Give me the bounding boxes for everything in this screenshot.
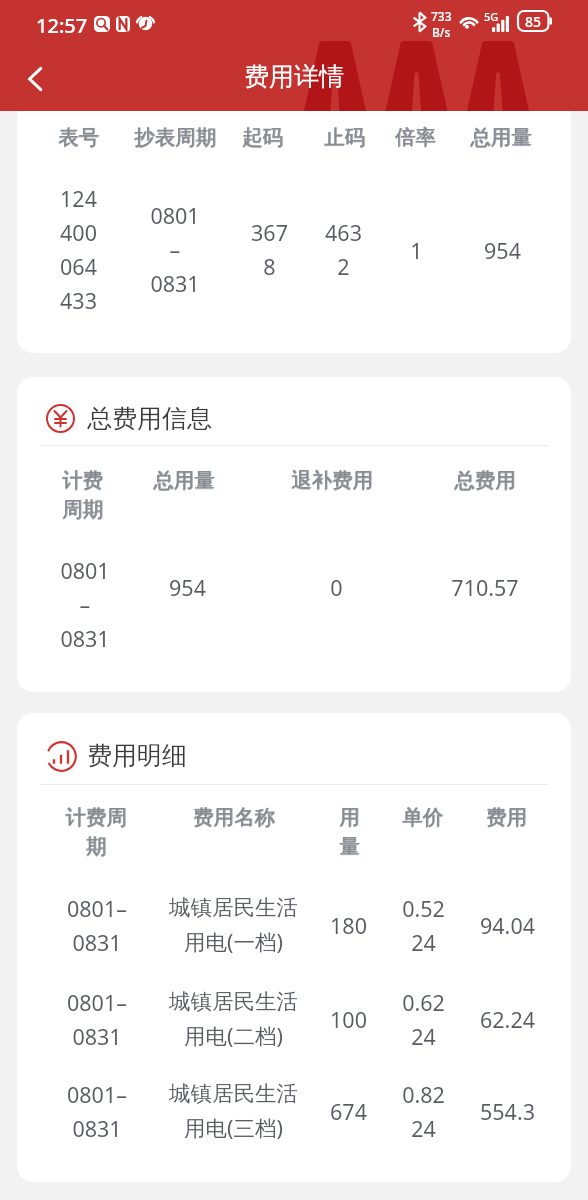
staticText: 733 [431, 8, 452, 24]
staticText: 倍率 [396, 124, 437, 150]
staticText: 城镇居民生活 用电(一档) [169, 894, 298, 956]
staticText: 单价 [402, 805, 443, 831]
staticText: 总费用信息 [87, 403, 212, 434]
staticText: 总费用 [455, 467, 517, 493]
staticText: B/s [432, 24, 451, 40]
staticText: 954 [484, 236, 521, 265]
staticText: 0.82 24 [402, 1080, 445, 1143]
staticText: 总用量 [470, 124, 532, 150]
staticText: 0801– 0831 [67, 894, 127, 957]
staticText: 710.57 [451, 573, 519, 602]
staticText: 0 [330, 573, 343, 602]
staticText: 954 [169, 573, 206, 602]
staticText: 退补费用 [292, 467, 374, 493]
staticText: 城镇居民生活 用电(三档) [169, 1080, 298, 1142]
staticText: 计费 周期 [62, 467, 103, 522]
staticText: 总用量 [154, 467, 216, 493]
staticText: 367 8 [251, 218, 288, 281]
staticText: 单价 [403, 804, 444, 830]
staticText: 用 量 [340, 804, 361, 859]
staticText: 费用 [486, 804, 527, 830]
staticText: 12:57 [36, 12, 88, 39]
staticText: 表号 [59, 124, 100, 150]
staticText: 用 量 [339, 805, 360, 860]
staticText: 倍率 [395, 124, 436, 150]
staticText: 124 400 064 433 [60, 184, 97, 315]
staticText: 计费周 期 [65, 804, 127, 859]
staticText: 起码 [242, 124, 283, 150]
staticText: 0.52 24 [402, 894, 445, 957]
staticText: 表号 [58, 124, 99, 150]
staticText: 止码 [325, 124, 366, 150]
button[interactable]: Back [10, 54, 60, 104]
staticText: 总费用 [454, 467, 516, 493]
staticText: 计费 周期 [62, 468, 103, 523]
staticText: 总用量 [153, 468, 215, 494]
staticText: 用 量 [339, 804, 360, 859]
staticText: 85 [525, 12, 542, 31]
staticText: 起码 [243, 124, 284, 150]
staticText: 计费 周期 [63, 467, 104, 522]
staticText: 62.24 [480, 1005, 535, 1034]
staticText: 倍率 [395, 125, 436, 151]
staticText: 抄表周期 [135, 124, 217, 150]
staticText: 674 [330, 1097, 367, 1126]
staticText: 止码 [324, 124, 365, 150]
staticText: 起码 [242, 125, 283, 151]
staticText: 0801– 0831 [67, 988, 127, 1051]
staticText: 0801– 0831 [67, 1080, 127, 1143]
staticText: 1 [410, 236, 423, 265]
staticText: 单价 [402, 804, 443, 830]
staticText: 总用量 [470, 125, 532, 151]
staticText: 退补费用 [291, 467, 373, 493]
staticText: 计费周 期 [66, 804, 128, 859]
staticText: 0.62 24 [402, 988, 445, 1051]
staticText: 费用 [487, 804, 528, 830]
staticText: 费用名称 [194, 804, 276, 830]
staticText: 554.3 [480, 1097, 535, 1126]
staticText: 费用名称 [193, 804, 275, 830]
staticText: 表号 [58, 125, 99, 151]
staticText: 94.04 [480, 911, 535, 940]
staticText: 0801 – 0831 [60, 556, 110, 653]
staticText: 退补费用 [291, 468, 373, 494]
staticText: 费用详情 [244, 61, 344, 92]
staticText: 总费用 [454, 468, 516, 494]
staticText: 费用 [486, 805, 527, 831]
staticText: 100 [330, 1005, 367, 1034]
staticText: 费用明细 [87, 740, 187, 771]
staticText: 463 2 [325, 218, 362, 281]
staticText: 抄表周期 [134, 125, 216, 151]
staticText: 5G [484, 9, 499, 24]
staticText: 计费周 期 [65, 805, 127, 860]
staticText: 抄表周期 [134, 124, 216, 150]
staticText: 总用量 [153, 467, 215, 493]
staticText: 止码 [324, 125, 365, 151]
staticText: 180 [330, 911, 367, 940]
staticText: 城镇居民生活 用电(二档) [169, 988, 298, 1050]
staticText: 费用名称 [193, 805, 275, 831]
staticText: 0801 – 0831 [150, 201, 200, 298]
staticText: 总用量 [471, 124, 533, 150]
